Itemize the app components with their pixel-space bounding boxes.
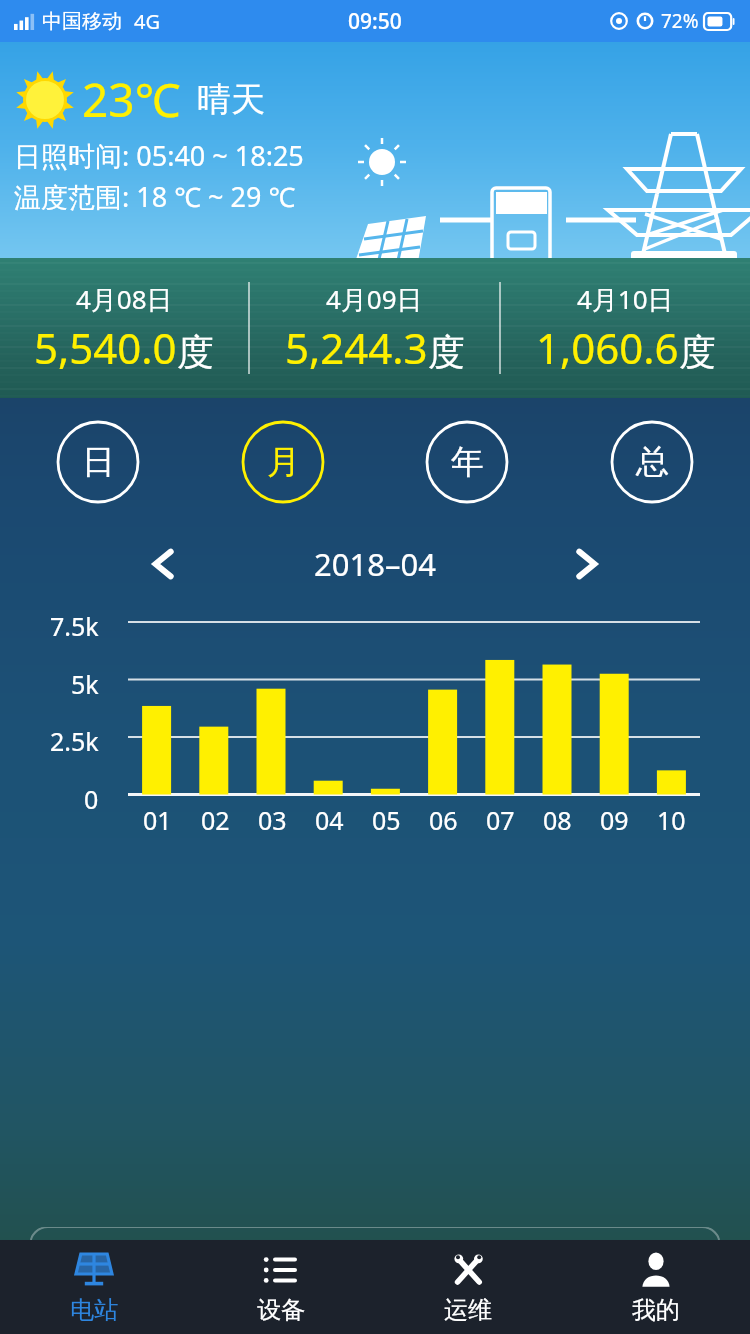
button[interactable]: 我的 — [562, 1240, 750, 1334]
staticText: 日 — [82, 441, 115, 483]
staticText: 月 — [267, 441, 300, 483]
staticText: 5,244.3 — [285, 319, 428, 376]
button[interactable]: 电站 — [0, 1240, 187, 1334]
staticText: 度 — [679, 329, 716, 376]
staticText: 晴天 — [197, 78, 265, 121]
staticText: 度 — [177, 329, 214, 376]
staticText: 5,540.0 — [34, 319, 177, 376]
button[interactable]: 设备 — [187, 1240, 374, 1334]
staticText: 4G — [134, 8, 160, 35]
staticText: 4月09日 — [326, 281, 423, 317]
staticText: 总 — [636, 441, 669, 483]
button[interactable]: Previous month — [136, 536, 192, 592]
staticText: 设备 — [257, 1295, 305, 1325]
staticText: 7.5k — [50, 609, 99, 643]
staticText: 01 — [143, 803, 172, 837]
staticText: 72% — [661, 8, 699, 34]
staticText: 03 — [258, 803, 287, 837]
staticText: 06 — [429, 803, 458, 837]
staticText: 温度范围: 18 ℃ ~ 29 ℃ — [14, 178, 296, 215]
staticText: 日照时间: 05:40 ~ 18:25 — [14, 137, 304, 174]
staticText: 我的 — [632, 1295, 680, 1325]
button[interactable]: 日 — [56, 420, 140, 504]
staticText: 运维 — [444, 1295, 492, 1325]
button[interactable]: 4月08日 — [0, 258, 248, 398]
staticText: 5k — [71, 667, 99, 701]
button[interactable] — [30, 1227, 720, 1287]
button[interactable]: 运维 — [374, 1240, 562, 1334]
staticText: 09 — [600, 803, 629, 837]
staticText: 10 — [657, 803, 686, 837]
button[interactable]: 4月09日 — [250, 258, 499, 398]
button[interactable]: 年 — [425, 420, 509, 504]
staticText: 23℃ — [82, 68, 181, 131]
staticText: 2018–04 — [314, 543, 436, 585]
staticText: 09:50 — [348, 7, 402, 36]
staticText: 07 — [486, 803, 515, 837]
staticText: 0 — [84, 782, 99, 816]
staticText: 电站 — [70, 1295, 118, 1325]
button[interactable]: 4月10日 — [501, 258, 750, 398]
staticText: 2.5k — [50, 724, 99, 758]
staticText: 1,060.6 — [536, 319, 679, 376]
button[interactable]: 月 — [241, 420, 325, 504]
staticText: 年 — [451, 441, 484, 483]
staticText: 02 — [201, 803, 230, 837]
staticText: 4月08日 — [76, 281, 173, 317]
staticText: 4月10日 — [577, 281, 674, 317]
staticText: 度 — [428, 329, 465, 376]
button[interactable]: 总 — [610, 420, 694, 504]
staticText: 05 — [372, 803, 401, 837]
staticText: 04 — [315, 803, 344, 837]
staticText: 中国移动 — [42, 9, 122, 34]
staticText: 08 — [543, 803, 572, 837]
button[interactable]: Next month — [558, 536, 614, 592]
